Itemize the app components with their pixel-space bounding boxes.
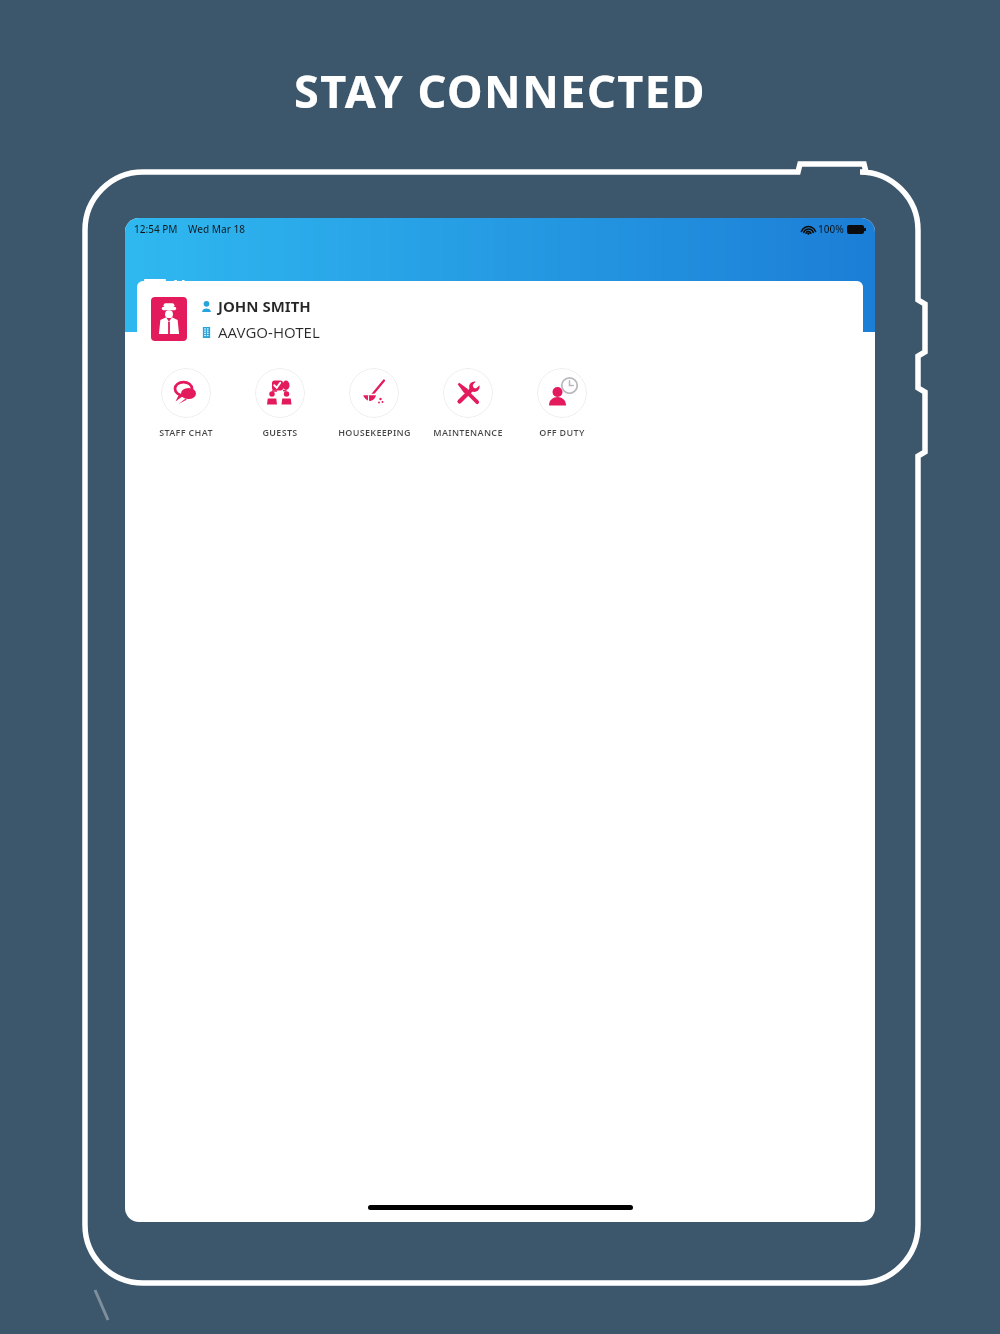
button[interactable]: HOUSEKEEPING	[327, 368, 421, 438]
button[interactable]: MAINTENANCE	[421, 368, 515, 438]
button[interactable]: JOHN SMITH	[137, 281, 863, 356]
staticText: STAFF CHAT	[159, 426, 213, 438]
button[interactable]: GUESTS	[233, 368, 327, 438]
button[interactable]: Open menu	[137, 268, 223, 304]
staticText: STAY CONNECTED	[294, 60, 706, 121]
staticText: Home	[173, 275, 223, 298]
staticText: AAVGO-HOTEL	[218, 322, 320, 342]
button[interactable]: OFF DUTY	[515, 368, 609, 438]
staticText: JOHN SMITH	[218, 296, 311, 316]
staticText: OFF DUTY	[539, 426, 585, 438]
button[interactable]: STAFF CHAT	[139, 368, 233, 438]
staticText: 100%	[818, 222, 844, 236]
other: Open menu	[137, 268, 173, 304]
staticText: GUESTS	[262, 426, 298, 438]
staticText: HOUSEKEEPING	[338, 426, 411, 438]
staticText: Wed Mar 18	[188, 222, 245, 236]
staticText: MAINTENANCE	[433, 426, 503, 438]
staticText: 12:54 PM	[134, 222, 178, 236]
